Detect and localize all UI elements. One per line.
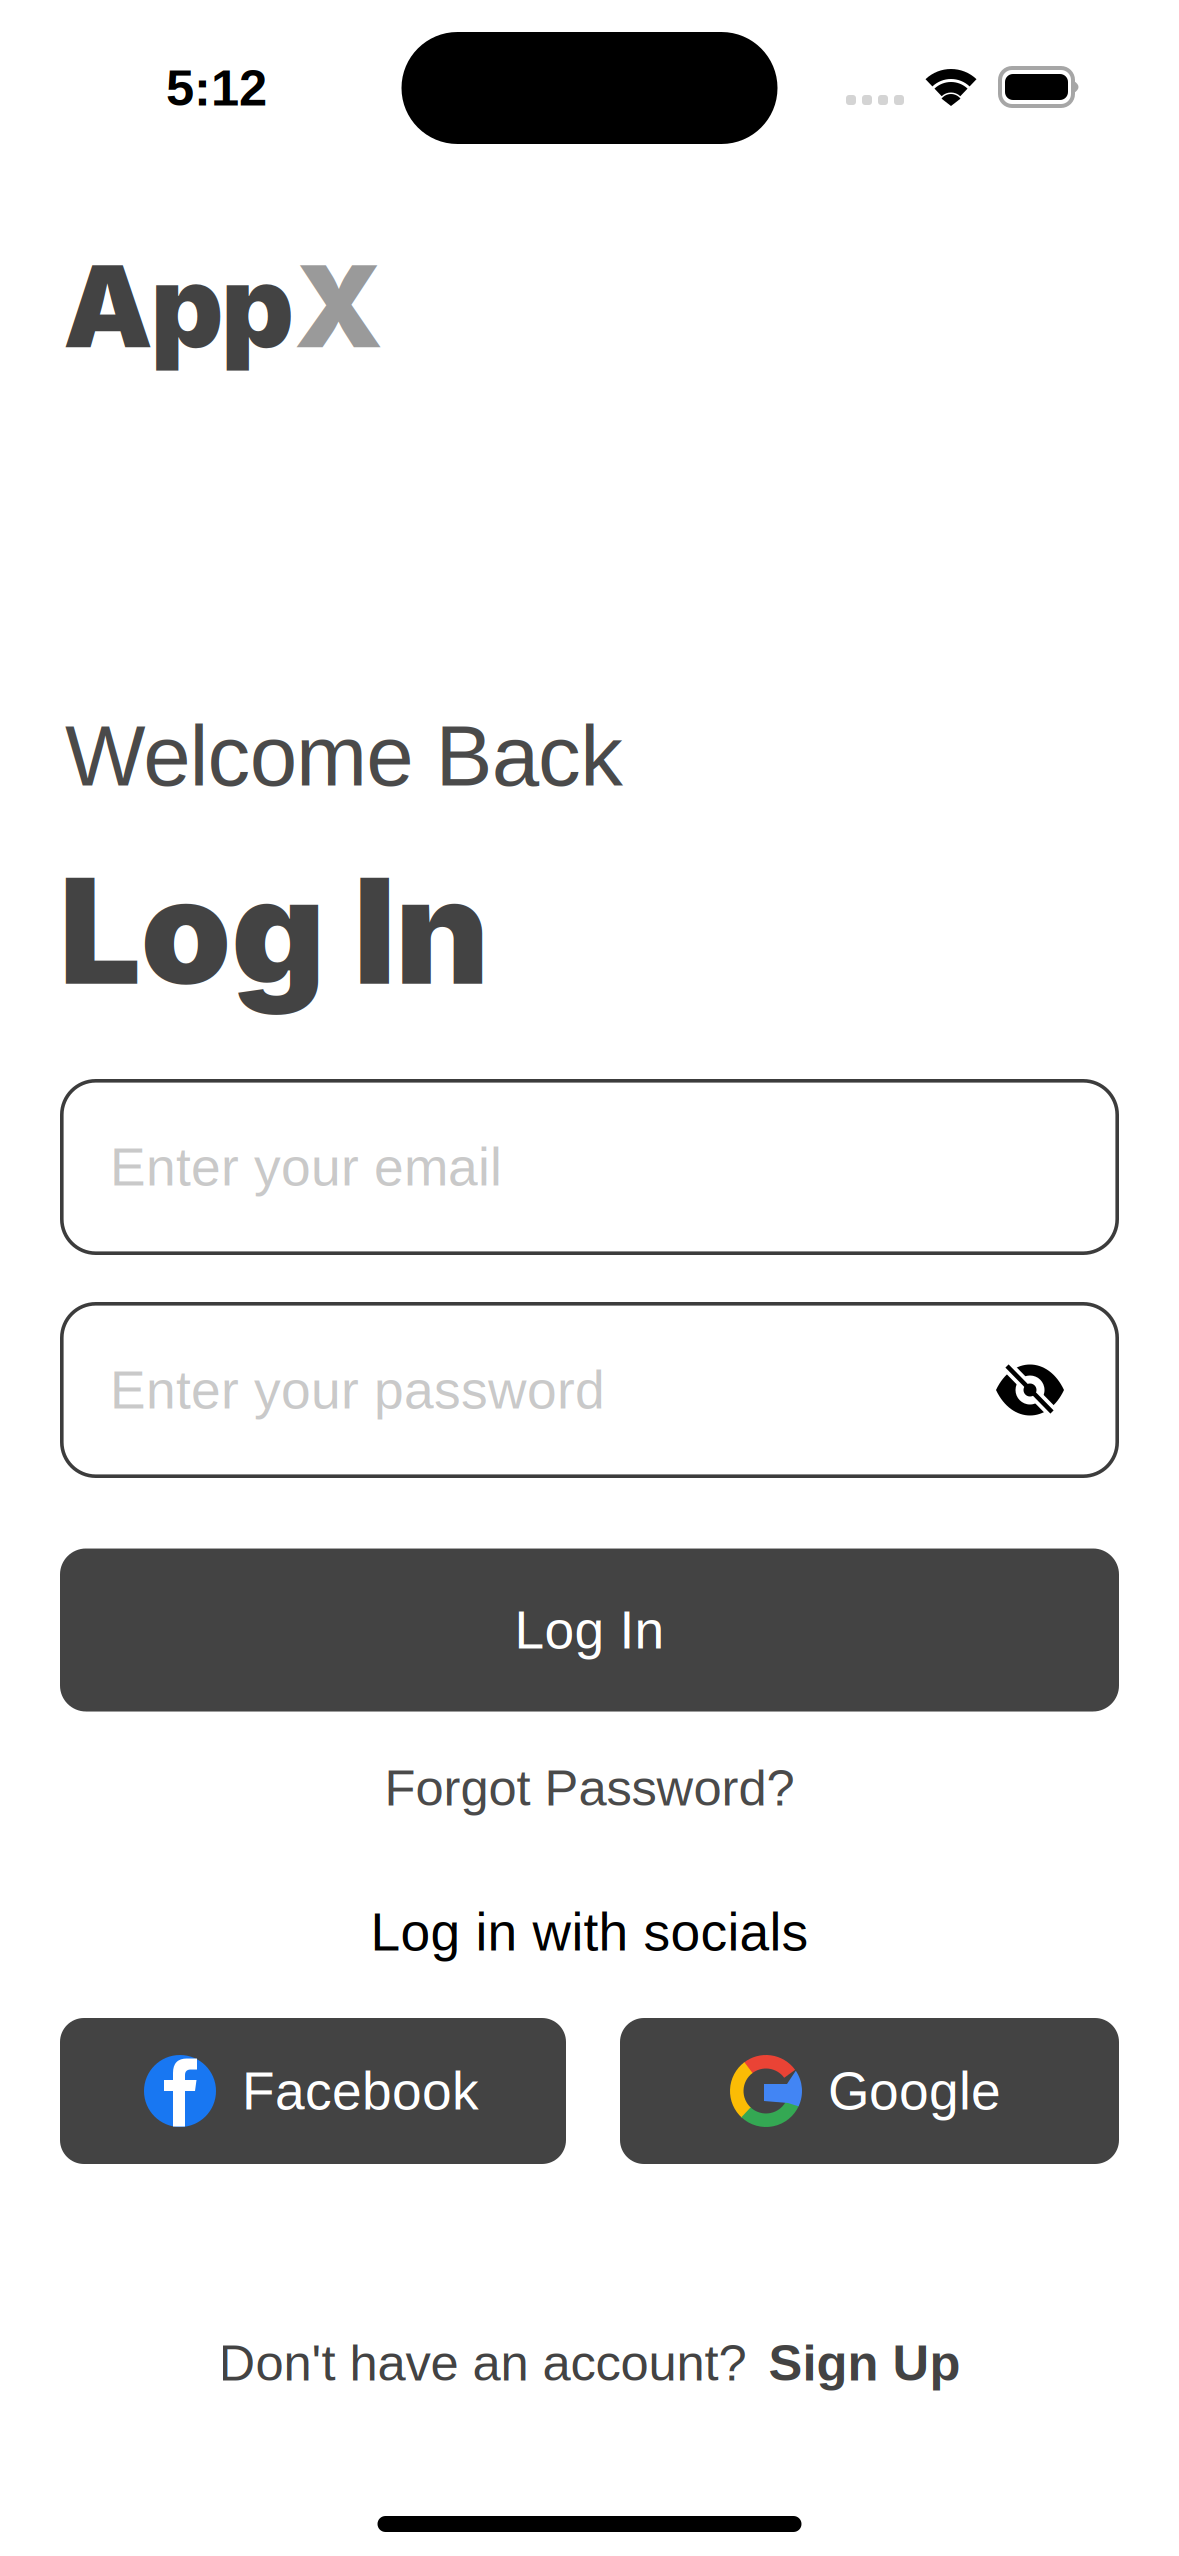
staticText: Forgot Password? (384, 1760, 794, 1816)
staticText: Log In (514, 1600, 664, 1660)
staticText: Sign Up (768, 2335, 960, 2391)
button[interactable]: Enter your email (60, 1079, 1119, 1255)
staticText: Welcome Back (65, 708, 623, 804)
staticText: Don't have an account? (218, 2335, 746, 2391)
staticText: Enter your password (110, 1360, 605, 1420)
button[interactable]: Facebook (60, 2018, 566, 2164)
staticText: Google (828, 2061, 1001, 2121)
button[interactable]: Log In (60, 1548, 1119, 1711)
button[interactable]: Enter your password (60, 1302, 1119, 1478)
button[interactable]: Show password (975, 1325, 1085, 1455)
staticText: Enter your email (110, 1137, 502, 1197)
button[interactable]: Google (620, 2018, 1119, 2164)
button[interactable]: Forgot Password? (309, 1745, 869, 1831)
staticText: Facebook (242, 2061, 479, 2121)
staticText: X (294, 237, 383, 374)
staticText: Log In (59, 843, 489, 1019)
button[interactable]: Sign Up (768, 2335, 960, 2391)
staticText: Log in with socials (370, 1902, 808, 1962)
staticText: App (63, 237, 294, 374)
staticText: 5:12 (166, 60, 267, 116)
